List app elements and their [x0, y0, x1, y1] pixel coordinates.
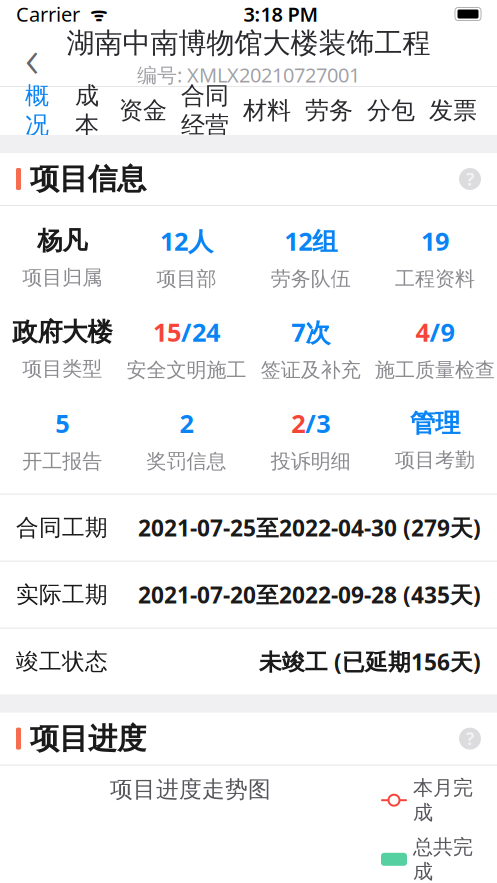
- staticText: 资金: [119, 96, 167, 125]
- staticText: 奖罚信息: [146, 449, 226, 474]
- staticText: 杨凡: [37, 225, 87, 256]
- staticText: 分包: [367, 96, 415, 125]
- staticText: /9: [429, 315, 454, 349]
- staticText: 项目信息: [30, 161, 146, 197]
- staticText: 政府大楼: [12, 316, 112, 348]
- button[interactable]: 12组: [248, 222, 373, 293]
- staticText: 5: [55, 406, 69, 440]
- staticText: 项目进度走势图: [110, 776, 271, 803]
- staticText: 19: [421, 224, 449, 258]
- button[interactable]: 4: [373, 313, 497, 384]
- staticText: 4: [415, 315, 429, 349]
- staticText: 湖南中南博物馆大楼装饰工程: [66, 26, 430, 60]
- button[interactable]: 政府大楼: [0, 314, 124, 383]
- button[interactable]: 杨凡: [0, 223, 124, 292]
- staticText: 2: [179, 406, 193, 440]
- staticText: 本月完成: [413, 776, 473, 825]
- button[interactable]: 资金: [112, 87, 174, 135]
- staticText: 未竣工 (已延期156天): [259, 647, 481, 677]
- staticText: 合同工期: [16, 514, 108, 541]
- staticText: 工程资料: [395, 267, 475, 291]
- staticText: 投诉明细: [271, 449, 351, 474]
- button[interactable]: 劳务: [298, 87, 360, 135]
- button[interactable]: Help: [459, 167, 481, 190]
- button[interactable]: Help: [459, 727, 481, 750]
- staticText: 劳务: [305, 96, 353, 125]
- staticText: 项目归属: [22, 265, 102, 290]
- staticText: ‹: [25, 22, 39, 92]
- staticText: 2021-07-20至2022-09-28 (435天): [138, 580, 481, 610]
- staticText: 合同经营: [181, 81, 229, 140]
- staticText: 概况: [25, 81, 49, 140]
- staticText: 12人: [160, 224, 213, 258]
- staticText: ᯤ: [80, 2, 107, 26]
- staticText: /24: [181, 315, 220, 349]
- button[interactable]: 发票: [422, 87, 484, 135]
- staticText: 15: [153, 315, 181, 349]
- staticText: 开工报告: [22, 449, 102, 474]
- staticText: 7次: [291, 315, 330, 349]
- staticText: 签证及补充: [261, 358, 361, 382]
- staticText: 项目部: [156, 267, 216, 291]
- staticText: 项目类型: [22, 357, 102, 381]
- button[interactable]: 5: [0, 404, 124, 476]
- staticText: 项目进度: [30, 721, 146, 757]
- staticText: 发票: [429, 96, 477, 125]
- staticText: 2021-07-25至2022-04-30 (279天): [138, 513, 481, 543]
- button[interactable]: 15: [124, 313, 248, 384]
- staticText: 3:18 PM: [243, 1, 318, 27]
- staticText: 实际工期: [16, 581, 108, 608]
- button[interactable]: 分包: [360, 87, 422, 135]
- button[interactable]: Back: [10, 35, 54, 79]
- button[interactable]: 19: [373, 222, 497, 293]
- staticText: 竣工状态: [16, 648, 108, 675]
- staticText: 管理: [410, 408, 460, 439]
- button[interactable]: 12人: [124, 222, 248, 293]
- button[interactable]: 概况: [12, 72, 62, 150]
- staticText: ?: [466, 167, 474, 190]
- staticText: 施工质量检查: [375, 358, 495, 382]
- staticText: 项目考勤: [395, 448, 475, 472]
- button[interactable]: 2: [248, 404, 373, 476]
- button[interactable]: 7次: [248, 313, 373, 384]
- button[interactable]: 合同经营: [174, 72, 236, 150]
- staticText: 总共完成: [413, 835, 473, 883]
- staticText: 劳务队伍: [271, 267, 351, 291]
- staticText: 材料: [243, 96, 291, 125]
- staticText: 成本: [75, 81, 99, 140]
- button[interactable]: 2: [124, 404, 248, 476]
- button[interactable]: 管理: [373, 406, 497, 474]
- button[interactable]: 成本: [62, 72, 112, 150]
- staticText: 编号: XMLX20210727001: [137, 61, 360, 88]
- staticText: /3: [305, 406, 330, 440]
- staticText: Carrier: [16, 1, 80, 27]
- staticText: 2: [291, 406, 305, 440]
- button[interactable]: 材料: [236, 87, 298, 135]
- staticText: 12组: [284, 224, 337, 258]
- staticText: ?: [466, 727, 474, 750]
- staticText: 安全文明施工: [126, 358, 246, 382]
